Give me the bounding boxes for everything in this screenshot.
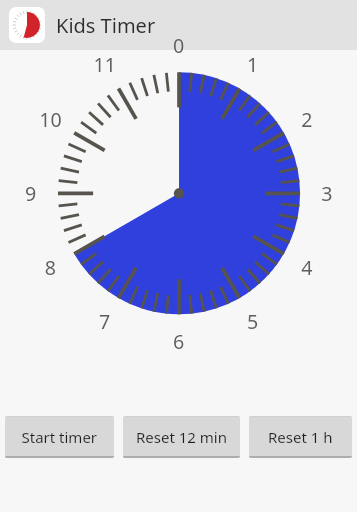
button[interactable] bbox=[5, 416, 114, 458]
button[interactable] bbox=[123, 416, 240, 458]
button[interactable] bbox=[249, 416, 352, 458]
other: Kids Timer icon bbox=[9, 7, 45, 43]
